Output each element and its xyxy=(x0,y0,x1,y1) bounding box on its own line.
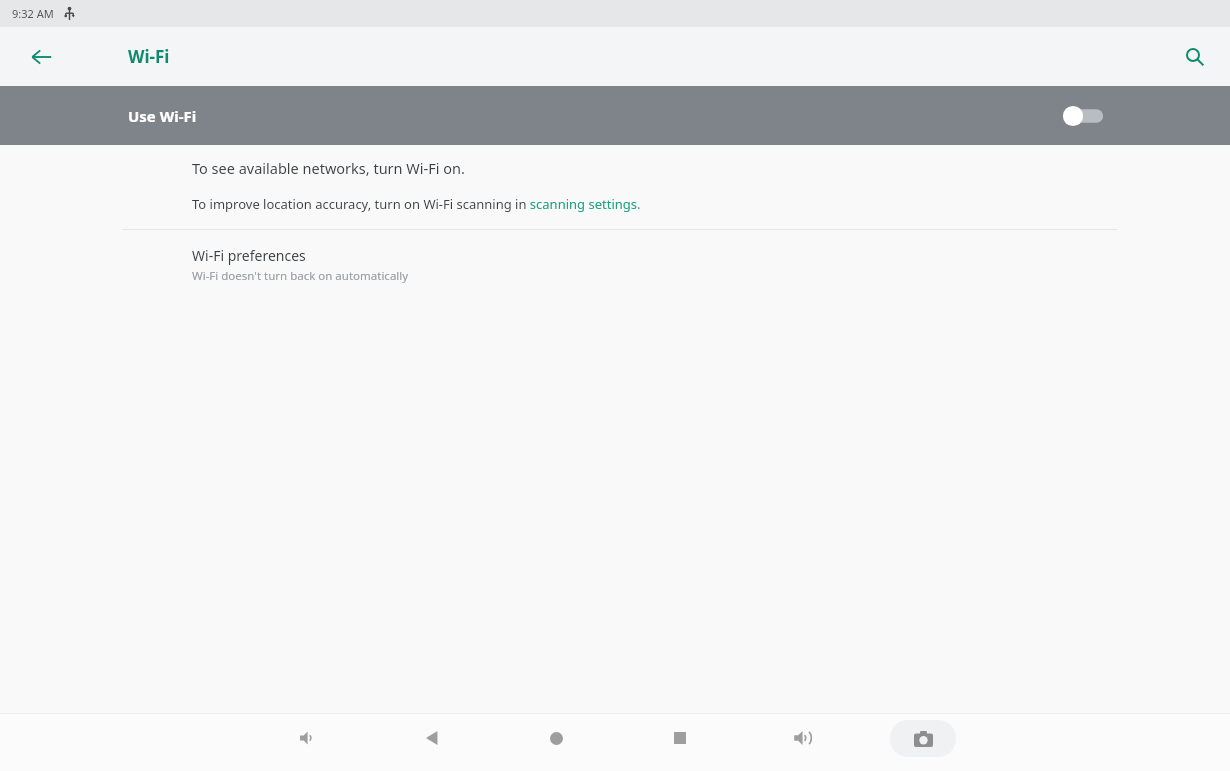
staticText: 9:32 AM xyxy=(12,6,54,21)
staticText: Wi-Fi preferences xyxy=(192,246,306,265)
button[interactable]: Volume up xyxy=(779,714,827,762)
button[interactable]: Back xyxy=(18,33,66,81)
button[interactable]: Search xyxy=(1171,33,1219,81)
button[interactable]: Volume down xyxy=(284,714,332,762)
button[interactable]: Camera xyxy=(890,720,956,757)
button[interactable]: Wi-Fi preferences xyxy=(0,230,1230,294)
staticText: Use Wi-Fi xyxy=(128,106,197,126)
staticText: Wi-Fi doesn't turn back on automatically xyxy=(192,268,409,284)
staticText: To see available networks, turn Wi-Fi on… xyxy=(192,158,465,178)
staticText: Wi-Fi xyxy=(128,45,170,68)
button[interactable]: Recents xyxy=(656,714,704,762)
button[interactable]: To improve location accuracy, turn on Wi… xyxy=(192,195,641,213)
button[interactable]: Use Wi-Fi xyxy=(0,86,1230,145)
button[interactable]: Home xyxy=(532,714,580,762)
button[interactable]: Use Wi-Fi toggle xyxy=(1062,96,1118,136)
button[interactable]: Back xyxy=(408,714,456,762)
